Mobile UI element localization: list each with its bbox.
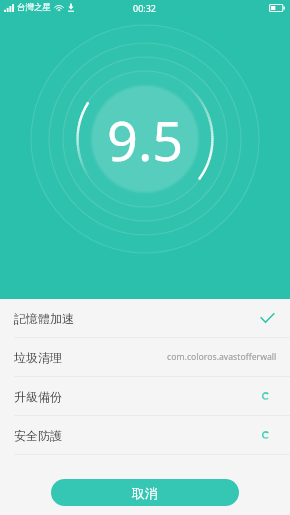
button[interactable]: 取消 (51, 479, 239, 506)
other: Loading (257, 425, 277, 445)
staticText: 記憶體加速 (14, 311, 74, 326)
button[interactable]: 垃圾清理 (0, 338, 290, 376)
staticText: 取消 (132, 485, 158, 501)
staticText: 安全防護 (14, 428, 62, 443)
other: Loading (257, 386, 277, 406)
staticText: 台灣之星 (17, 2, 51, 13)
staticText: 升級備份 (14, 389, 62, 404)
staticText: 9.5 (107, 103, 184, 177)
staticText: com.coloros.avastofferwall (167, 351, 277, 363)
other: Done (257, 308, 277, 328)
button[interactable]: 升級備份 (0, 377, 290, 415)
button[interactable]: 記憶體加速 (0, 299, 290, 337)
staticText: 00:32 (133, 2, 157, 14)
staticText: 垃圾清理 (14, 350, 62, 365)
button[interactable]: 安全防護 (0, 416, 290, 454)
